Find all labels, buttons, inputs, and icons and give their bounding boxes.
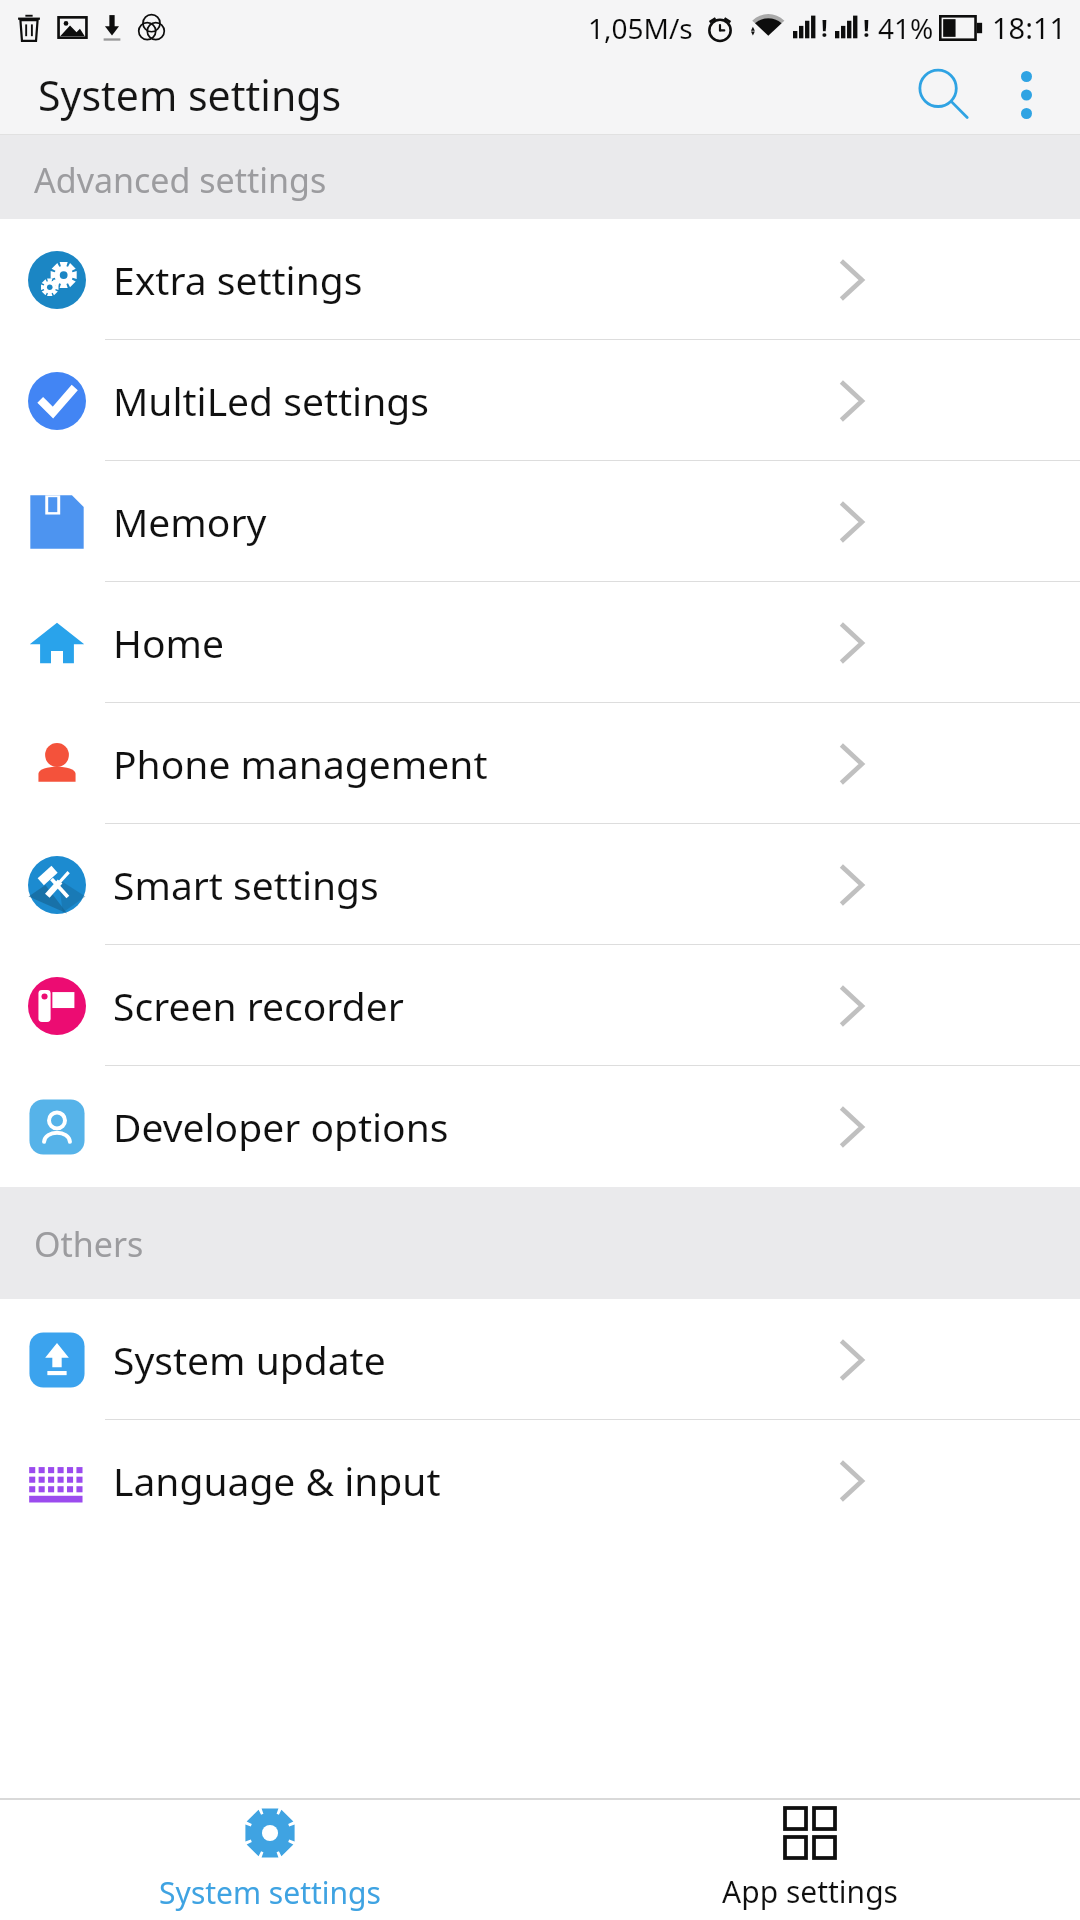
- staticText: Language & input: [113, 1454, 441, 1507]
- staticText: Screen recorder: [113, 979, 404, 1032]
- button[interactable]: More options: [986, 55, 1066, 135]
- staticText: !: [863, 11, 870, 44]
- staticText: MultiLed settings: [113, 374, 429, 427]
- button[interactable]: Extra settings: [0, 219, 1080, 340]
- button[interactable]: Screen recorder: [0, 945, 1080, 1066]
- staticText: Phone management: [113, 737, 488, 790]
- staticText: 1,05M/s: [588, 9, 693, 47]
- staticText: System settings: [159, 1872, 381, 1913]
- staticText: Memory: [113, 495, 267, 548]
- button[interactable]: Home: [0, 582, 1080, 703]
- staticText: 18:11: [992, 8, 1067, 47]
- button[interactable]: Memory: [0, 461, 1080, 582]
- staticText: Developer options: [113, 1100, 449, 1153]
- button[interactable]: MultiLed settings: [0, 340, 1080, 461]
- button[interactable]: Search: [898, 55, 986, 135]
- button[interactable]: App settings: [540, 1800, 1080, 1920]
- button[interactable]: Phone management: [0, 703, 1080, 824]
- staticText: Smart settings: [113, 858, 379, 911]
- staticText: Home: [113, 616, 224, 669]
- button[interactable]: Developer options: [0, 1066, 1080, 1187]
- staticText: App settings: [722, 1871, 898, 1912]
- staticText: 41%: [878, 9, 934, 47]
- button[interactable]: Smart settings: [0, 824, 1080, 945]
- staticText: System update: [113, 1333, 386, 1386]
- button[interactable]: System update: [0, 1299, 1080, 1420]
- staticText: Extra settings: [113, 253, 363, 306]
- staticText: System settings: [38, 67, 342, 123]
- staticText: !: [821, 11, 828, 44]
- staticText: Advanced settings: [34, 157, 327, 203]
- button[interactable]: Language & input: [0, 1420, 1080, 1541]
- button[interactable]: System settings: [0, 1800, 540, 1920]
- staticText: Others: [34, 1221, 144, 1267]
